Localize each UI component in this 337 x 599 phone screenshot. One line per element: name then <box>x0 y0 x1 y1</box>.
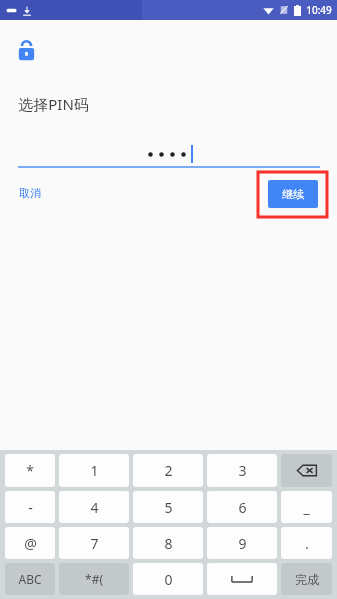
staticText: - <box>28 498 33 517</box>
button[interactable]: 继续 <box>268 180 318 208</box>
button[interactable]: *#( <box>59 563 129 595</box>
button[interactable]: - <box>5 491 55 523</box>
staticText: _ <box>303 498 310 517</box>
staticText: *#( <box>85 571 103 587</box>
staticText: ABC <box>18 571 42 587</box>
staticText: 6 <box>238 498 247 517</box>
button[interactable]: @ <box>5 527 55 559</box>
staticText: * <box>26 461 34 480</box>
button[interactable]: 6 <box>207 491 277 523</box>
staticText: . <box>305 534 309 553</box>
staticText: 4 <box>90 498 99 517</box>
button[interactable]: 2 <box>133 454 203 487</box>
button[interactable]: _ <box>281 491 332 523</box>
staticText: 5 <box>164 498 173 517</box>
button[interactable]: Backspace <box>281 454 332 487</box>
button[interactable]: 4 <box>59 491 129 523</box>
button[interactable]: 完成 <box>281 563 332 595</box>
button[interactable]: 5 <box>133 491 203 523</box>
staticText: 继续 <box>282 187 304 201</box>
staticText: 7 <box>90 534 99 553</box>
button[interactable]: 8 <box>133 527 203 559</box>
staticText: 2 <box>164 461 173 480</box>
button[interactable]: 取消 <box>12 180 48 206</box>
button[interactable]: 9 <box>207 527 277 559</box>
button[interactable]: 1 <box>59 454 129 487</box>
staticText: 3 <box>238 461 247 480</box>
staticText: 10:49 <box>306 3 332 17</box>
button[interactable]: * <box>5 454 55 487</box>
staticText: @ <box>24 534 37 553</box>
staticText: 0 <box>164 570 173 589</box>
staticText: 选择PIN码 <box>18 94 89 114</box>
button[interactable]: Space <box>207 563 277 595</box>
staticText: 取消 <box>19 186 41 200</box>
staticText: 1 <box>90 461 99 480</box>
button[interactable]: . <box>281 527 332 559</box>
button[interactable]: 0 <box>133 563 203 595</box>
staticText: 9 <box>238 534 247 553</box>
staticText: 完成 <box>295 572 319 587</box>
button[interactable]: 3 <box>207 454 277 487</box>
button[interactable]: 7 <box>59 527 129 559</box>
staticText: 8 <box>164 534 173 553</box>
button[interactable]: ABC <box>5 563 55 595</box>
